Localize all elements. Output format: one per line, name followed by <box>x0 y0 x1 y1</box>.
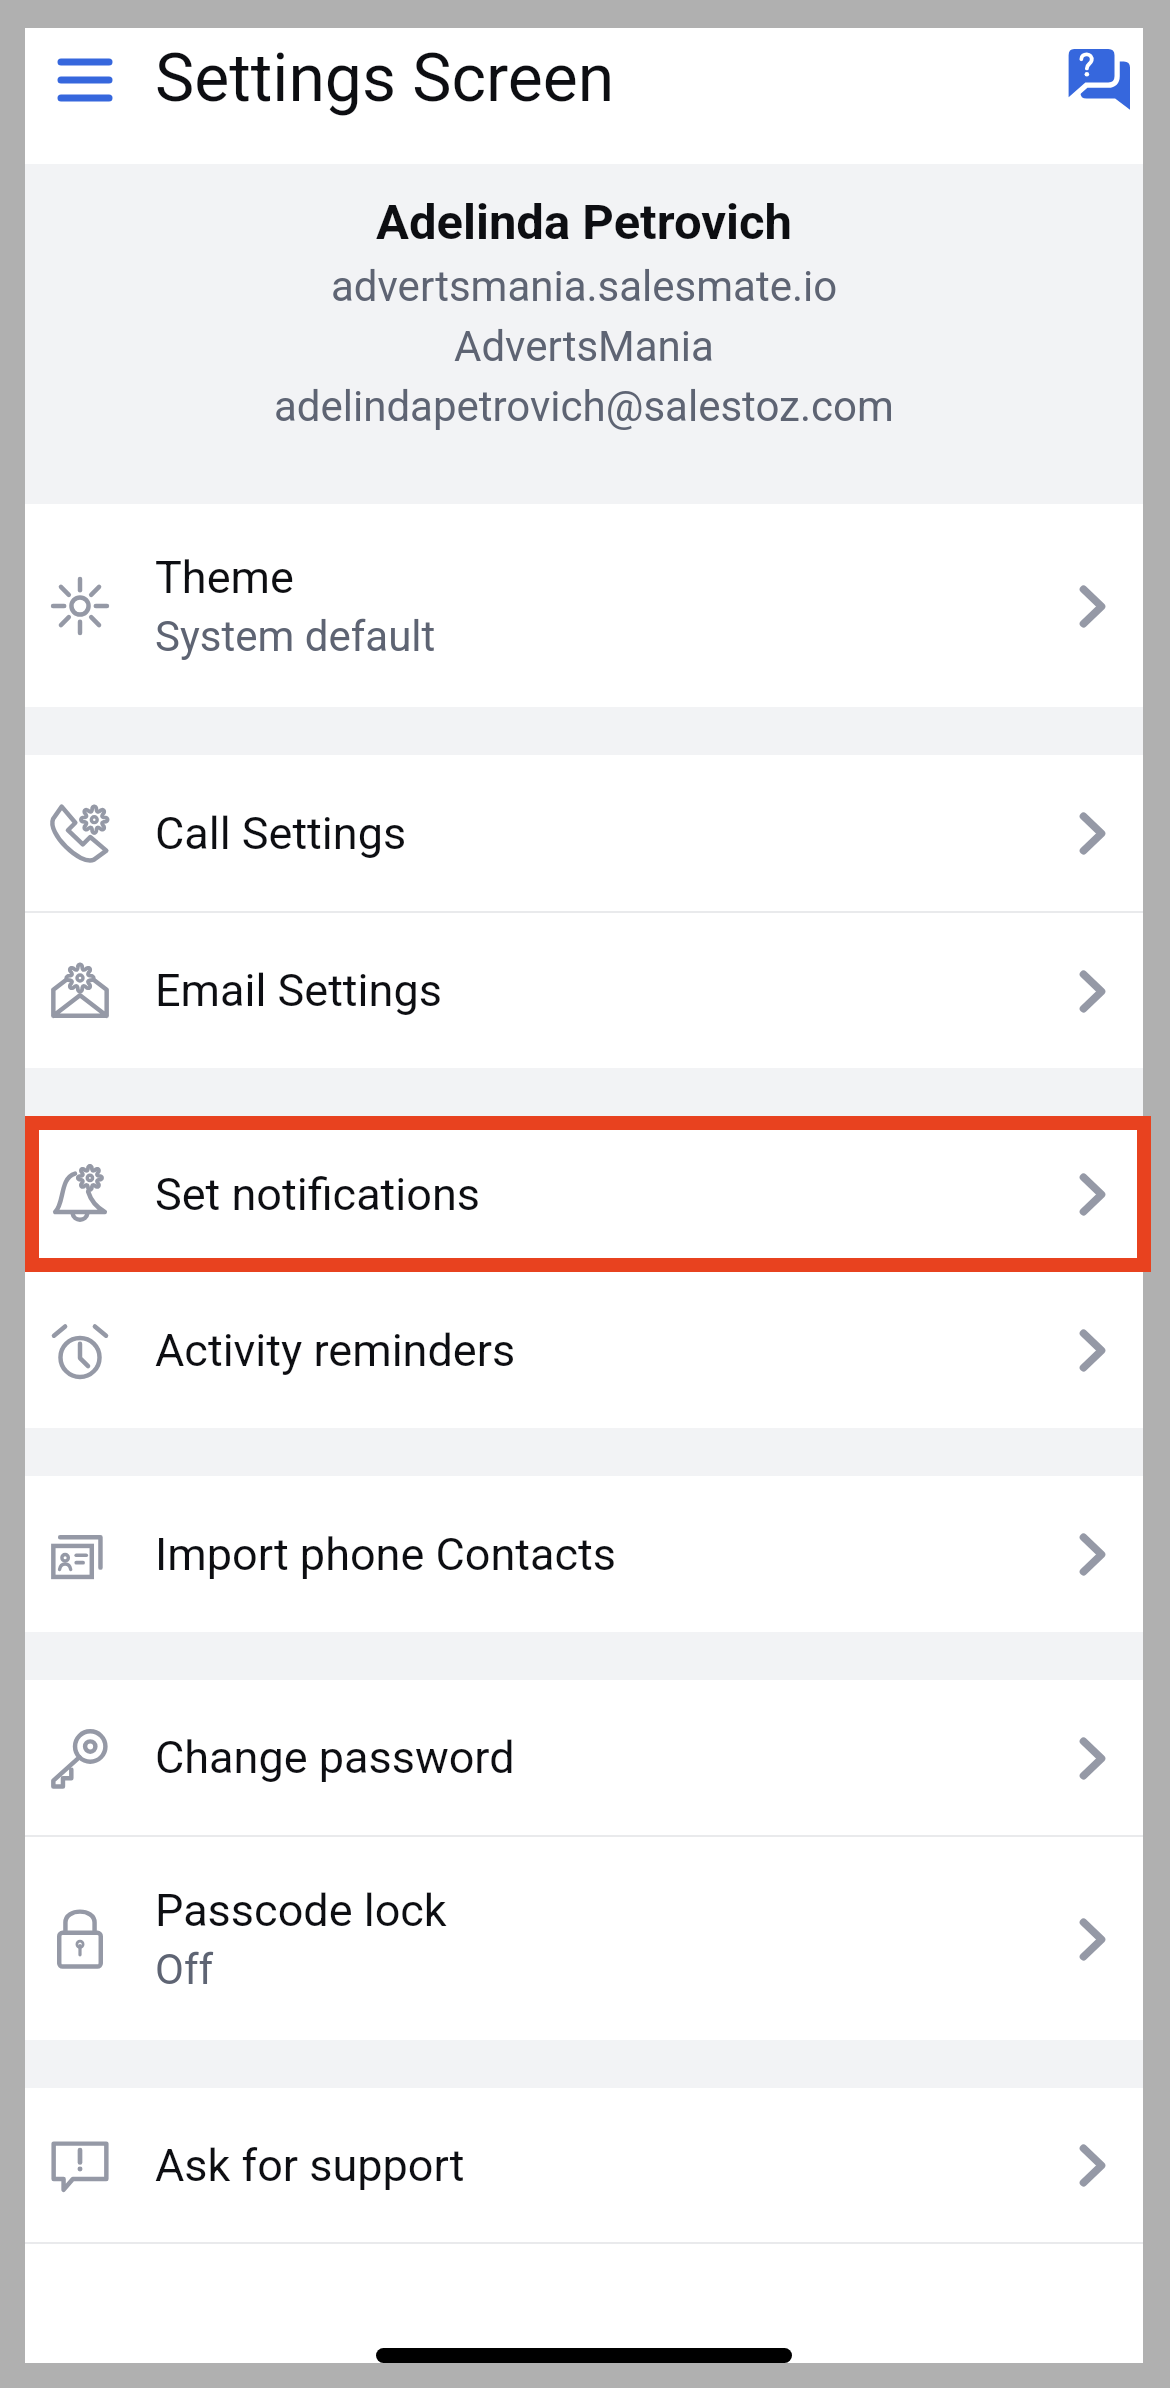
button[interactable]: Call Settings <box>25 755 1143 911</box>
staticText: System default <box>155 612 436 661</box>
button[interactable]: Change password <box>25 1680 1143 1835</box>
button[interactable]: Help <box>1055 36 1143 124</box>
button[interactable]: Import phone Contacts <box>25 1476 1143 1632</box>
button[interactable]: Theme <box>25 504 1143 707</box>
staticText: Email Settings <box>155 964 442 1017</box>
staticText: Call Settings <box>155 807 407 860</box>
staticText: Import phone Contacts <box>155 1528 616 1581</box>
button[interactable]: Set notifications <box>25 1116 1143 1272</box>
staticText: Ask for support <box>155 2139 465 2192</box>
staticText: Change password <box>155 1731 515 1784</box>
button[interactable]: Activity reminders <box>25 1272 1143 1428</box>
staticText: Adelinda Petrovich <box>376 194 792 251</box>
staticText: advertsmania.salesmate.io <box>331 262 838 311</box>
button[interactable]: Passcode lock <box>25 1837 1143 2040</box>
staticText: Theme <box>155 551 294 604</box>
button[interactable]: Email Settings <box>25 913 1143 1068</box>
staticText: Set notifications <box>155 1168 481 1221</box>
staticText: adelindapetrovich@salestoz.com <box>274 382 894 431</box>
staticText: Activity reminders <box>155 1324 516 1377</box>
button[interactable]: Ask for support <box>25 2088 1143 2242</box>
staticText: Settings Screen <box>155 40 615 117</box>
button[interactable]: Menu <box>42 37 128 123</box>
staticText: Off <box>155 1945 214 1994</box>
staticText: AdvertsMania <box>454 322 714 371</box>
staticText: Passcode lock <box>155 1884 447 1937</box>
